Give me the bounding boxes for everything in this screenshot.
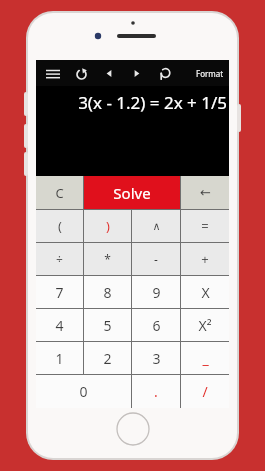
button[interactable]: 8 bbox=[84, 276, 131, 308]
button[interactable]: 9 bbox=[132, 276, 180, 308]
staticText: X² bbox=[198, 316, 212, 335]
button[interactable]: ∧ bbox=[132, 210, 180, 242]
staticText: ∧ bbox=[152, 220, 161, 233]
button[interactable]: . bbox=[132, 375, 180, 408]
button[interactable]: 6 bbox=[132, 309, 180, 341]
button[interactable]: 1 bbox=[36, 342, 83, 374]
staticText: Solve bbox=[113, 183, 151, 203]
button[interactable]: - bbox=[132, 243, 180, 275]
button[interactable]: Next bbox=[126, 60, 148, 86]
button[interactable]: Undo bbox=[153, 60, 177, 86]
button[interactable]: 4 bbox=[36, 309, 83, 341]
staticText: 6 bbox=[152, 316, 161, 335]
staticText: 5 bbox=[103, 316, 112, 335]
staticText: + bbox=[201, 250, 209, 268]
staticText: ÷ bbox=[56, 251, 63, 267]
staticText: 9 bbox=[152, 283, 161, 302]
staticText: - bbox=[154, 251, 158, 267]
button[interactable]: Menu bbox=[41, 60, 65, 86]
staticText: 4 bbox=[55, 316, 64, 335]
button[interactable]: ) bbox=[84, 210, 131, 242]
button[interactable]: * bbox=[84, 243, 131, 275]
staticText: ← bbox=[200, 185, 211, 200]
staticText: ( bbox=[58, 217, 62, 235]
button[interactable]: ( bbox=[36, 210, 83, 242]
button[interactable]: Backspace bbox=[181, 176, 229, 209]
staticText: 2 bbox=[103, 349, 112, 368]
button[interactable]: X² bbox=[181, 309, 229, 341]
button[interactable]: / bbox=[181, 375, 229, 408]
button[interactable]: Solve bbox=[84, 176, 180, 209]
button[interactable]: 5 bbox=[84, 309, 131, 341]
staticText: * bbox=[104, 251, 111, 267]
staticText: 7 bbox=[55, 283, 64, 302]
button[interactable]: _ bbox=[181, 342, 229, 374]
staticText: = bbox=[201, 217, 209, 235]
staticText: _ bbox=[202, 349, 209, 368]
button[interactable]: ÷ bbox=[36, 243, 83, 275]
button[interactable]: 3 bbox=[132, 342, 180, 374]
button[interactable]: 2 bbox=[84, 342, 131, 374]
button[interactable]: X bbox=[181, 276, 229, 308]
staticText: 3 bbox=[152, 349, 161, 368]
button[interactable]: Redo bbox=[69, 60, 93, 86]
staticText: 1 bbox=[55, 349, 64, 368]
staticText: 0 bbox=[79, 382, 88, 401]
button[interactable]: Format bbox=[191, 60, 229, 86]
button[interactable]: 7 bbox=[36, 276, 83, 308]
button[interactable]: + bbox=[181, 243, 229, 275]
staticText: / bbox=[202, 382, 208, 401]
staticText: C bbox=[55, 184, 64, 202]
staticText: ) bbox=[106, 217, 110, 235]
staticText: . bbox=[154, 382, 158, 401]
staticText: 8 bbox=[103, 283, 112, 302]
button[interactable]: 0 bbox=[36, 375, 131, 408]
button[interactable]: C bbox=[36, 176, 83, 209]
button[interactable]: Previous bbox=[98, 60, 120, 86]
staticText: X bbox=[201, 283, 210, 302]
staticText: 3(x - 1.2) = 2x + 1/5 bbox=[78, 91, 227, 114]
button[interactable]: = bbox=[181, 210, 229, 242]
staticText: Format bbox=[196, 68, 224, 79]
